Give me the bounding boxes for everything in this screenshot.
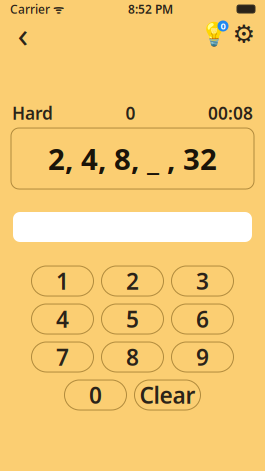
staticText: ⚙ <box>232 20 255 48</box>
button[interactable]: Hints <box>199 19 229 49</box>
button[interactable]: 9 <box>171 342 233 372</box>
staticText: Carrier <box>10 1 50 17</box>
button[interactable]: 4 <box>31 304 93 334</box>
staticText: 0 <box>220 20 225 32</box>
button[interactable]: Answer field <box>0 212 265 242</box>
staticText: 0 <box>125 101 135 124</box>
button[interactable]: Settings <box>229 19 259 49</box>
button[interactable]: 1 <box>31 266 93 296</box>
staticText: 5 <box>126 304 139 334</box>
staticText: 0 <box>89 380 102 410</box>
staticText: 9 <box>196 342 209 372</box>
button[interactable]: 3 <box>171 266 233 296</box>
button[interactable]: 0 <box>64 380 126 410</box>
staticText: 8:52 PM <box>128 1 173 17</box>
staticText: Hard <box>12 101 53 124</box>
button[interactable]: 2 <box>101 266 163 296</box>
staticText: ‹ <box>17 11 28 57</box>
staticText: 3 <box>196 266 209 296</box>
staticText: 6 <box>196 304 209 334</box>
staticText: 7 <box>56 342 69 372</box>
staticText: 2, 4, 8, _ , 32 <box>48 139 217 178</box>
staticText: 2 <box>126 266 139 296</box>
staticText: 💡 <box>200 21 228 47</box>
staticText: 8 <box>126 342 139 372</box>
button[interactable]: Clear <box>134 380 200 410</box>
staticText: Clear <box>139 380 195 410</box>
staticText: 4 <box>56 304 69 334</box>
button[interactable]: 7 <box>31 342 93 372</box>
button[interactable]: 5 <box>101 304 163 334</box>
button[interactable]: 6 <box>171 304 233 334</box>
staticText: 1 <box>56 266 69 296</box>
staticText: 00:08 <box>208 101 253 124</box>
button[interactable]: 8 <box>101 342 163 372</box>
staticText: ᯤ <box>50 1 64 17</box>
button[interactable]: Back <box>6 17 40 51</box>
